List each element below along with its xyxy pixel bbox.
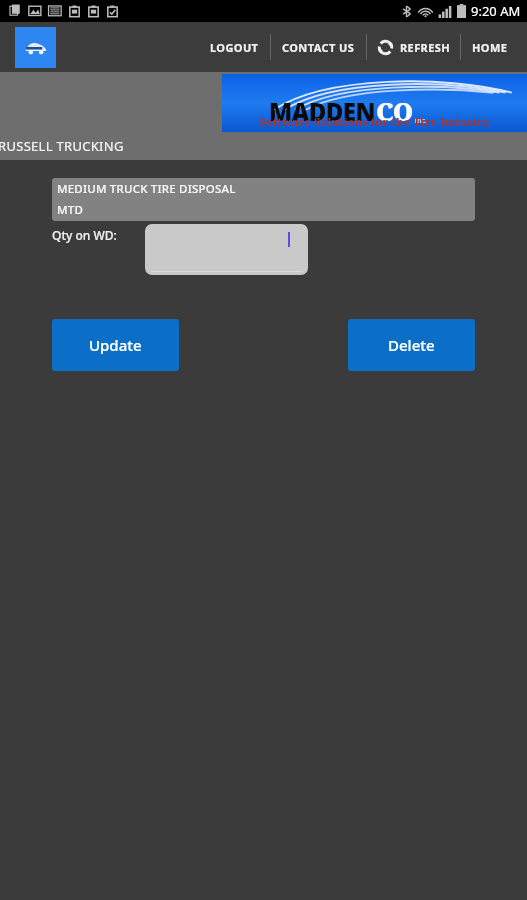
button[interactable]: MEDIUM TRUCK TIRE DISPOSAL: [52, 178, 475, 221]
button[interactable]: Quantity input: [145, 224, 308, 275]
staticText: MADDEN: [269, 95, 376, 128]
button[interactable]: LOGOUT: [199, 22, 270, 72]
staticText: Delete: [388, 335, 435, 355]
staticText: inc.: [413, 116, 428, 126]
staticText: LOGOUT: [210, 40, 259, 55]
staticText: REFRESH: [400, 40, 451, 55]
button[interactable]: CONTACT US: [271, 22, 366, 72]
staticText: Software Solutions for the Tire Industry: [259, 114, 490, 129]
button[interactable]: Update: [52, 319, 179, 371]
staticText: MEDIUM TRUCK TIRE DISPOSAL: [57, 181, 236, 197]
button[interactable]: Delete: [348, 319, 475, 371]
staticText: CONTACT US: [282, 40, 355, 55]
staticText: RUSSELL TRUCKING: [0, 137, 124, 155]
button[interactable]: REFRESH: [367, 22, 460, 72]
staticText: Update: [89, 335, 142, 355]
button[interactable]: MaddenCo logo: [222, 74, 527, 132]
staticText: MTD: [57, 202, 84, 218]
staticText: HOME: [472, 40, 508, 55]
staticText: Qty on WD:: [52, 227, 117, 243]
button[interactable]: HOME: [461, 22, 519, 72]
staticText: 9:20 AM: [471, 2, 521, 20]
button[interactable]: App home: [15, 27, 56, 68]
staticText: CO: [376, 94, 413, 128]
